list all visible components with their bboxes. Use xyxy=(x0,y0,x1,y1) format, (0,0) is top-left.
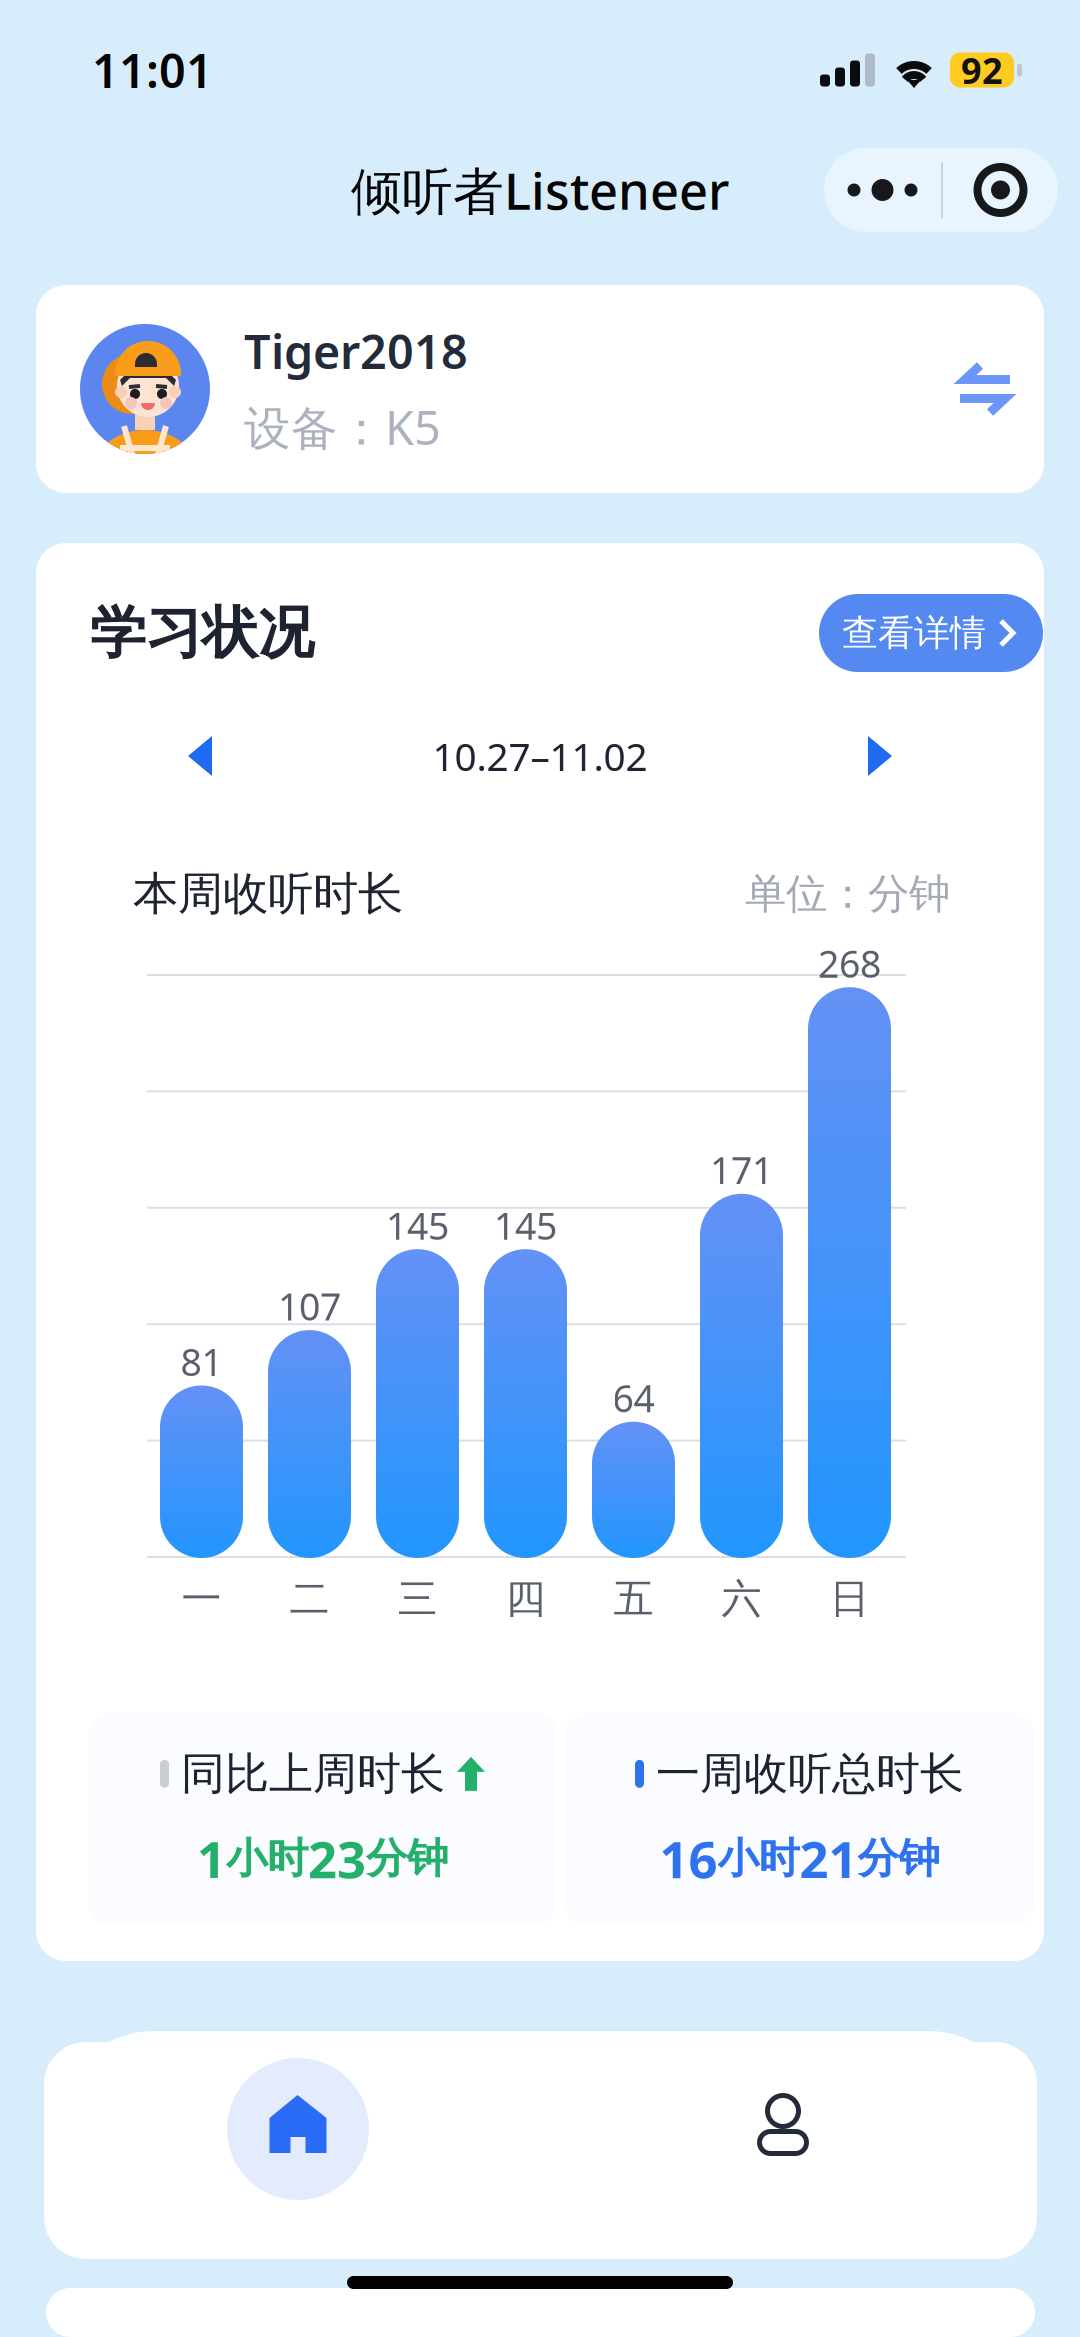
button[interactable]: 查看详情 xyxy=(819,594,1043,672)
staticText: 16 xyxy=(659,1825,717,1892)
staticText: 1 xyxy=(197,1825,226,1892)
staticText: 六 xyxy=(721,1574,761,1623)
staticText: Tiger2018 xyxy=(244,320,468,382)
staticText: 107 xyxy=(278,1281,341,1331)
staticText: 设备：K5 xyxy=(244,396,441,458)
button[interactable]: Next week xyxy=(868,736,892,776)
staticText: 268 xyxy=(818,938,881,988)
staticText: 分钟 xyxy=(857,1833,939,1884)
staticText: 三 xyxy=(397,1574,437,1623)
staticText: 单位：分钟 xyxy=(745,869,950,919)
staticText: 145 xyxy=(386,1200,449,1250)
button[interactable]: Previous week xyxy=(188,736,212,776)
staticText: 81 xyxy=(180,1337,222,1386)
staticText: 查看详情 xyxy=(842,611,986,655)
staticText: 本周收听时长 xyxy=(133,866,403,922)
staticText: 小时 xyxy=(717,1833,799,1884)
staticText: 145 xyxy=(494,1200,557,1250)
staticText: 二 xyxy=(289,1574,329,1623)
staticText: 11:01 xyxy=(92,39,213,101)
staticText: 10.27–11.02 xyxy=(432,730,647,782)
staticText: 日 xyxy=(829,1574,869,1623)
button[interactable]: Home xyxy=(227,2058,369,2200)
staticText: 一周收听总时长 xyxy=(656,1747,964,1801)
staticText: 同比上周时长 xyxy=(181,1747,445,1801)
button[interactable]: Tiger2018 xyxy=(36,285,1044,493)
button[interactable]: Profile xyxy=(728,2056,838,2166)
staticText: 92 xyxy=(961,46,1003,94)
staticText: 23 xyxy=(308,1825,366,1892)
staticText: 64 xyxy=(612,1373,654,1422)
staticText: 学习状况 xyxy=(90,599,314,667)
staticText: 五 xyxy=(613,1574,653,1623)
staticText: 21 xyxy=(799,1825,857,1892)
staticText: 倾听者Listeneer xyxy=(351,156,729,224)
button[interactable]: Mini program menu xyxy=(824,148,1058,232)
staticText: 小时 xyxy=(226,1833,308,1884)
staticText: 一 xyxy=(181,1574,221,1623)
staticText: 分钟 xyxy=(366,1833,448,1884)
staticText: 四 xyxy=(505,1574,545,1623)
staticText: 171 xyxy=(710,1145,773,1195)
